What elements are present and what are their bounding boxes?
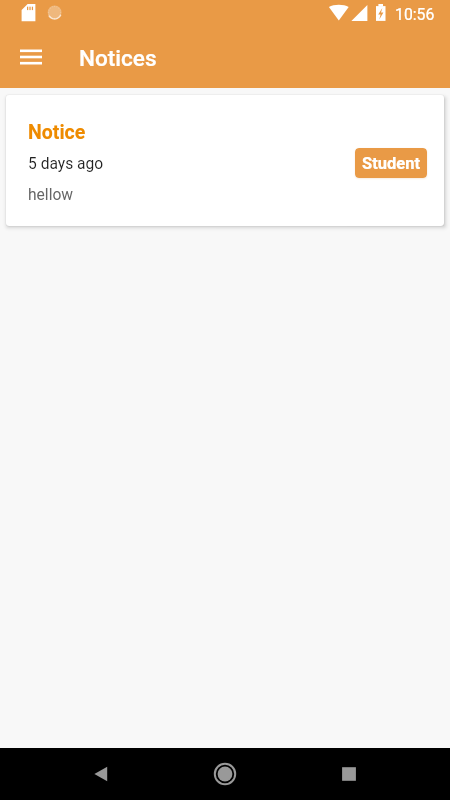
button[interactable]: Notice bbox=[6, 95, 444, 226]
button[interactable]: Open navigation menu bbox=[8, 34, 54, 80]
staticText: Notice bbox=[28, 121, 86, 144]
button[interactable]: Student bbox=[355, 148, 427, 178]
staticText: 10:56 bbox=[395, 5, 435, 24]
button[interactable]: Back bbox=[75, 748, 127, 800]
button[interactable]: Home bbox=[199, 748, 251, 800]
staticText: Notices bbox=[79, 45, 157, 71]
staticText: 5 days ago bbox=[28, 155, 104, 173]
button[interactable]: Recent apps bbox=[323, 748, 375, 800]
staticText: hellow bbox=[28, 186, 74, 204]
staticText: Student bbox=[362, 154, 420, 173]
